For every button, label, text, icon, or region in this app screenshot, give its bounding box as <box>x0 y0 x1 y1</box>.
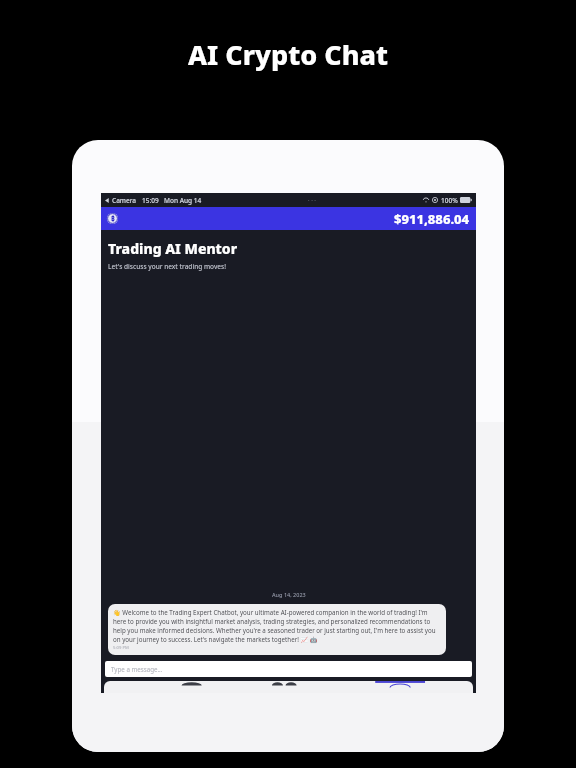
staticText: Trading AI Mentor <box>108 239 238 258</box>
staticText: 15:09 <box>142 196 159 205</box>
button[interactable]: Bitcoin wallet <box>101 207 476 230</box>
staticText: Camera <box>112 196 137 205</box>
staticText: 5:09 PM <box>113 645 129 651</box>
staticText: Type a message... <box>111 665 163 673</box>
button[interactable]: Type a message... <box>105 661 472 677</box>
staticText: 100% <box>441 196 458 205</box>
staticText: Aug 14, 2023 <box>272 591 306 598</box>
staticText: AI Crypto Chat <box>188 36 388 73</box>
staticText: · · · <box>308 196 316 204</box>
staticText: $911,886.04 <box>394 210 470 228</box>
button[interactable]: 👋 Welcome to the Trading Expert Chatbot,… <box>108 604 446 655</box>
staticText: Let's discuss your next trading moves! <box>108 262 227 271</box>
staticText: 👋 Welcome to the Trading Expert Chatbot,… <box>113 608 441 644</box>
other: Bitcoin wallet <box>107 213 118 224</box>
staticText: Mon Aug 14 <box>164 196 202 205</box>
staticText: ₿ <box>111 214 115 223</box>
